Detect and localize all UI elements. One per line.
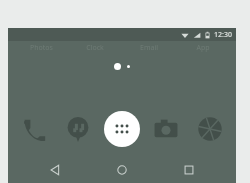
- staticText: Photos: [30, 43, 53, 53]
- staticText: 12:30: [214, 30, 232, 40]
- button[interactable]: Camera: [148, 111, 184, 147]
- button[interactable]: Phone: [16, 111, 52, 147]
- button[interactable]: [114, 63, 121, 70]
- button[interactable]: Messages: [60, 111, 96, 147]
- button[interactable]: Home: [102, 158, 142, 182]
- button[interactable]: Photos: [14, 43, 68, 53]
- staticText: Clock: [86, 43, 104, 53]
- button[interactable]: [127, 65, 130, 68]
- staticText: Email: [140, 43, 158, 53]
- staticText: App: [196, 43, 210, 53]
- button[interactable]: Gallery: [192, 111, 228, 147]
- button[interactable]: Email: [122, 43, 176, 53]
- button[interactable]: Back: [35, 158, 75, 182]
- button[interactable]: Recent apps: [169, 158, 209, 182]
- button[interactable]: All apps: [104, 111, 140, 147]
